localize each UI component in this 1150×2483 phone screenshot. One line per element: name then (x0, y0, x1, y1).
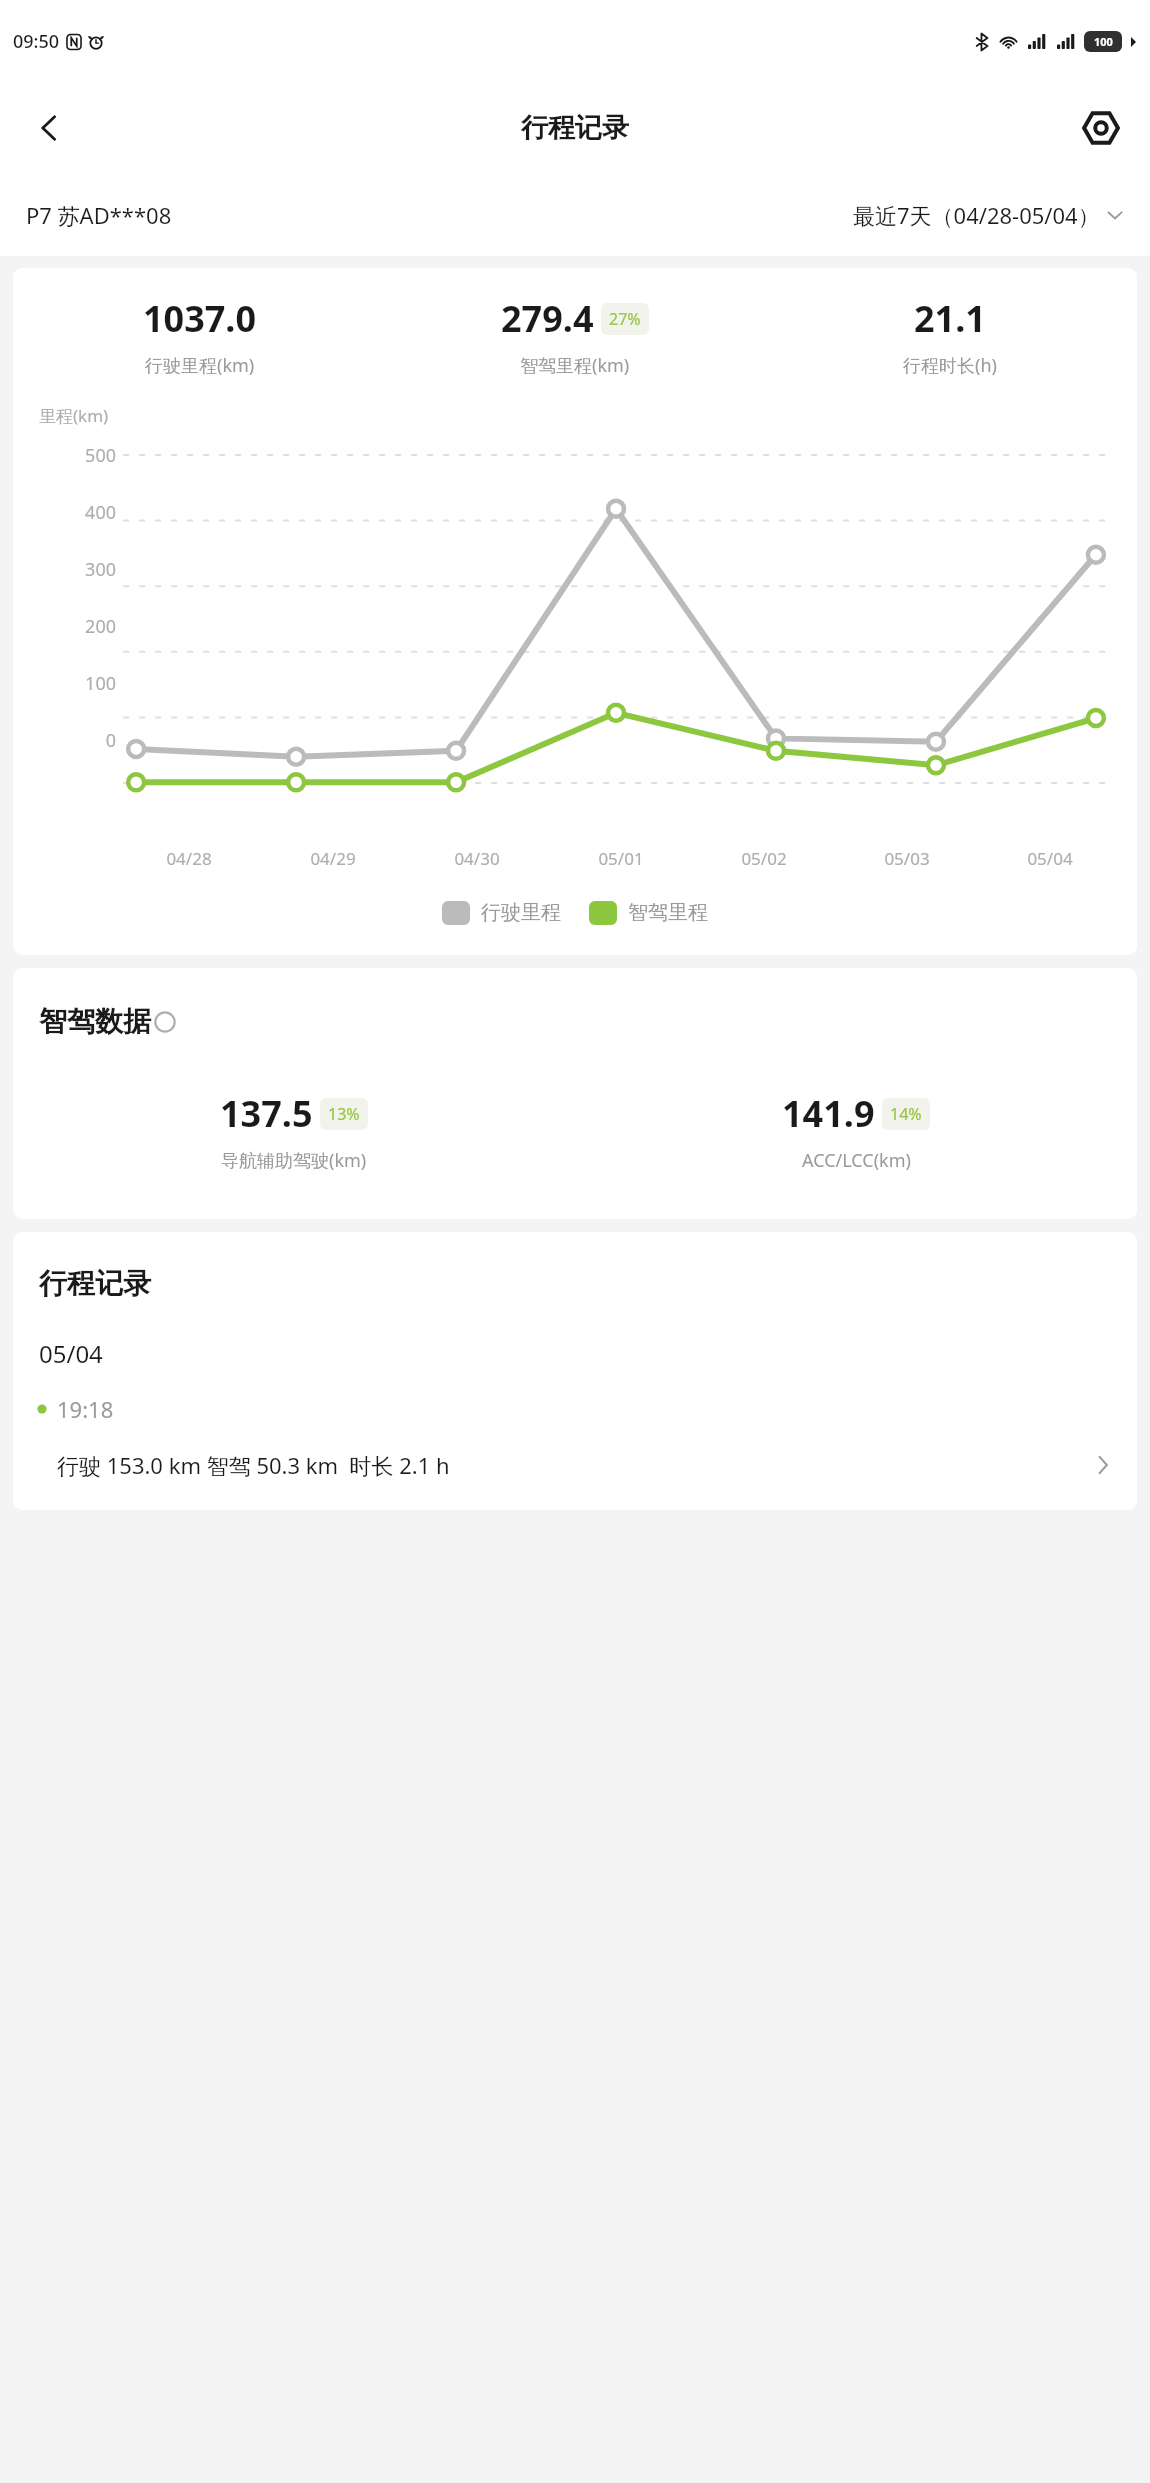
button[interactable]: 最近7天（04/28-05/04） (853, 200, 1126, 230)
staticText: 里程(km) (39, 404, 109, 427)
staticText: 09:50 (13, 29, 60, 54)
staticText: 05/01 (598, 847, 644, 870)
button[interactable]: 智驾数据 (39, 1004, 176, 1039)
staticText: P7 苏AD***08 (26, 200, 172, 230)
staticText: 19:18 (57, 1394, 114, 1424)
staticText: 1037.0 (143, 294, 257, 343)
staticText: 100 (85, 671, 116, 696)
staticText: 最近7天（04/28-05/04） (853, 200, 1100, 230)
staticText: 300 (85, 557, 116, 582)
staticText: 行驶里程 (481, 900, 561, 925)
staticText: 智驾里程(km) (520, 353, 630, 378)
staticText: 05/03 (884, 847, 930, 870)
staticText: 05/04 (1027, 847, 1073, 870)
staticText: 行程记录 (39, 1266, 151, 1301)
staticText: 05/02 (741, 847, 787, 870)
staticText: 100 (1094, 34, 1113, 49)
staticText: 137.5 (220, 1089, 313, 1138)
staticText: 04/30 (454, 847, 500, 870)
staticText: 200 (85, 614, 116, 639)
button[interactable]: 19:18 (13, 1394, 1137, 1510)
staticText: 500 (85, 443, 116, 468)
button[interactable]: P7 苏AD***08 (26, 200, 172, 230)
staticText: 行程时长(h) (903, 353, 997, 378)
button[interactable]: Back (18, 97, 80, 159)
staticText: 141.9 (782, 1089, 875, 1138)
staticText: 13% (328, 1103, 360, 1125)
staticText: 04/29 (310, 847, 356, 870)
staticText: 04/28 (166, 847, 212, 870)
staticText: 27% (609, 308, 641, 330)
staticText: 行驶 153.0 km 智驾 50.3 km 时长 2.1 h (57, 1450, 450, 1480)
staticText: 智驾数据 (39, 1004, 151, 1039)
staticText: 05/04 (39, 1337, 103, 1370)
staticText: ACC/LCC(km) (802, 1148, 911, 1173)
staticText: 279.4 (501, 294, 594, 343)
staticText: 导航辅助驾驶(km) (221, 1148, 367, 1173)
staticText: 21.1 (914, 294, 986, 343)
staticText: 0 (105, 728, 116, 753)
staticText: 行程记录 (521, 111, 629, 145)
staticText: 400 (85, 500, 116, 525)
staticText: 14% (890, 1103, 922, 1125)
staticText: 智驾里程 (628, 900, 708, 925)
staticText: 行驶里程(km) (145, 353, 255, 378)
button[interactable]: Settings (1070, 97, 1132, 159)
